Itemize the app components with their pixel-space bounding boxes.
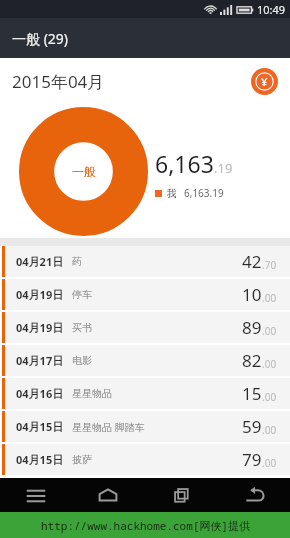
staticText: 04月15日 (16, 452, 64, 467)
staticText: 披萨 (72, 453, 92, 466)
staticText: 6,163 (155, 148, 214, 179)
staticText: 一般 (72, 164, 96, 179)
staticText: .70 (262, 258, 277, 272)
staticText: .00 (262, 456, 277, 470)
button[interactable]: Home (72, 478, 144, 512)
button[interactable]: 04月17日 (0, 345, 290, 376)
staticText: http://www.hackhome.com[网侠]提供 (41, 518, 250, 533)
staticText: 04月19日 (16, 320, 64, 335)
staticText: 04月15日 (16, 419, 64, 434)
staticText: 星星物品 脚踏车 (72, 420, 145, 434)
button[interactable]: Add expense (251, 68, 278, 95)
button[interactable]: Menu (0, 478, 72, 512)
staticText: 停车 (72, 288, 92, 301)
staticText: ¥ (261, 74, 268, 89)
staticText: .00 (262, 324, 277, 338)
staticText: 79 (242, 448, 262, 471)
button[interactable]: 04月15日 (0, 411, 290, 442)
staticText: .00 (262, 291, 277, 305)
staticText: 04月19日 (16, 287, 64, 302)
button[interactable]: 04月19日 (0, 279, 290, 310)
staticText: 药 (72, 255, 82, 268)
staticText: 89 (242, 316, 262, 339)
staticText: 59 (242, 415, 262, 438)
button[interactable]: 04月21日 (0, 246, 290, 277)
staticText: 2015年04月 (12, 70, 105, 93)
staticText: .19 (214, 159, 233, 177)
button[interactable]: Recents (144, 478, 217, 512)
staticText: .00 (262, 423, 277, 437)
staticText: 6,163.19 (184, 186, 224, 200)
staticText: 10:49 (257, 2, 286, 17)
button[interactable]: 04月19日 (0, 312, 290, 343)
staticText: 82 (242, 349, 262, 372)
staticText: 15 (242, 382, 262, 405)
staticText: 我 (167, 187, 177, 200)
staticText: 04月17日 (16, 353, 64, 368)
staticText: 买书 (72, 321, 92, 334)
staticText: 04月16日 (16, 386, 64, 401)
button[interactable]: 04月16日 (0, 378, 290, 409)
button[interactable]: Back (217, 478, 290, 512)
staticText: 一般 (29) (12, 29, 69, 48)
staticText: .00 (262, 357, 277, 371)
staticText: .00 (262, 390, 277, 404)
staticText: 电影 (72, 354, 92, 367)
button[interactable]: 04月15日 (0, 444, 290, 475)
staticText: 42 (242, 250, 262, 273)
staticText: 星星物品 (72, 387, 112, 400)
staticText: 04月21日 (16, 254, 64, 269)
staticText: 10 (242, 283, 262, 306)
